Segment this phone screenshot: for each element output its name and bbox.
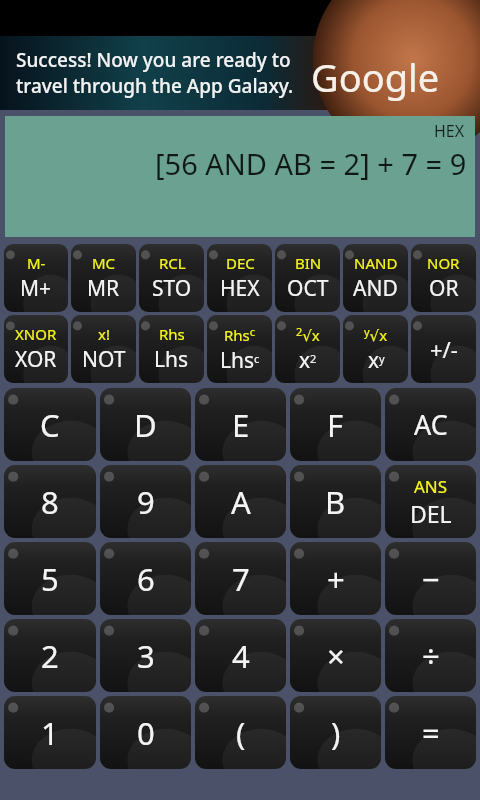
staticText: 7 xyxy=(232,558,250,600)
staticText: RCL xyxy=(159,253,186,273)
button[interactable]: 1 xyxy=(4,696,96,769)
staticText: 6 xyxy=(137,558,155,600)
staticText: Lhsc xyxy=(220,346,260,375)
staticText: [56 AND AB = 2] + 7 = 9 xyxy=(155,144,467,183)
staticText: Success! Now you are ready to xyxy=(16,47,291,73)
button[interactable]: Rhsc xyxy=(207,315,272,383)
button[interactable]: 6 xyxy=(100,542,191,615)
staticText: XNOR xyxy=(15,324,57,344)
staticText: 9 xyxy=(137,481,155,523)
staticText: B xyxy=(325,481,346,523)
staticText: 0 xyxy=(137,712,155,754)
button[interactable]: 3 xyxy=(100,619,191,692)
staticText: A xyxy=(231,481,251,523)
staticText: OCT xyxy=(287,274,329,303)
button[interactable]: 5 xyxy=(4,542,96,615)
button[interactable]: + xyxy=(290,542,381,615)
button[interactable]: DEC xyxy=(207,244,272,312)
staticText: 8 xyxy=(41,481,59,523)
button[interactable]: 2√x xyxy=(275,315,340,383)
button[interactable]: y√x xyxy=(343,315,408,383)
staticText: HEX xyxy=(220,274,260,303)
staticText: 2 xyxy=(41,635,59,677)
staticText: − xyxy=(422,558,440,600)
button[interactable]: x! xyxy=(71,315,136,383)
button[interactable]: F xyxy=(290,388,381,461)
button[interactable]: E xyxy=(195,388,286,461)
button[interactable]: × xyxy=(290,619,381,692)
staticText: 2√x xyxy=(296,324,320,345)
staticText: MR xyxy=(87,274,120,303)
staticText: F xyxy=(327,404,344,446)
button[interactable]: HEX xyxy=(5,116,475,237)
button[interactable]: 0 xyxy=(100,696,191,769)
button[interactable]: − xyxy=(385,542,476,615)
button[interactable]: M- xyxy=(4,244,68,312)
button[interactable]: NAND xyxy=(343,244,408,312)
staticText: OR xyxy=(429,274,459,303)
staticText: NOT xyxy=(82,345,126,374)
button[interactable]: XNOR xyxy=(4,315,68,383)
staticText: ( xyxy=(236,712,246,754)
staticText: STO xyxy=(152,274,192,303)
staticText: M+ xyxy=(20,274,52,303)
staticText: 1 xyxy=(41,712,59,754)
staticText: Rhsc xyxy=(224,324,256,345)
button[interactable]: 8 xyxy=(4,465,96,538)
button[interactable]: 2 xyxy=(4,619,96,692)
staticText: DEC xyxy=(226,253,255,273)
button[interactable]: 9 xyxy=(100,465,191,538)
staticText: MC xyxy=(92,253,116,273)
staticText: × xyxy=(327,635,345,677)
staticText: x! xyxy=(98,324,110,344)
button[interactable]: Advertisement xyxy=(0,36,480,110)
button[interactable]: 4 xyxy=(195,619,286,692)
button[interactable]: Rhs xyxy=(139,315,204,383)
staticText: 11:34 xyxy=(418,4,472,33)
staticText: travel through the App Galaxy. xyxy=(16,73,294,99)
button[interactable]: C xyxy=(4,388,96,461)
button[interactable]: 7 xyxy=(195,542,286,615)
button[interactable]: ÷ xyxy=(385,619,476,692)
button[interactable]: AC xyxy=(385,388,476,461)
button[interactable]: +/- xyxy=(411,315,476,383)
staticText: 3 xyxy=(137,635,155,677)
staticText: +/- xyxy=(430,334,458,364)
button[interactable]: = xyxy=(385,696,476,769)
staticText: 5 xyxy=(41,558,59,600)
staticText: NAND xyxy=(354,253,398,273)
staticText: C xyxy=(40,404,60,446)
button[interactable]: NOR xyxy=(411,244,476,312)
staticText: HEX xyxy=(434,120,465,142)
staticText: Lhs xyxy=(154,345,189,374)
staticText: E xyxy=(232,404,250,446)
button[interactable]: MC xyxy=(71,244,136,312)
staticText: 3G xyxy=(358,11,373,26)
staticText: Google xyxy=(311,51,440,103)
button[interactable]: ) xyxy=(290,696,381,769)
staticText: + xyxy=(327,558,345,600)
staticText: ) xyxy=(331,712,341,754)
button[interactable]: A xyxy=(195,465,286,538)
staticText: XOR xyxy=(15,345,57,374)
staticText: x2 xyxy=(299,346,317,375)
staticText: AC xyxy=(414,406,448,443)
staticText: DEL xyxy=(410,498,452,529)
staticText: xy xyxy=(368,346,385,375)
button[interactable]: D xyxy=(100,388,191,461)
staticText: = xyxy=(422,712,440,754)
button[interactable]: RCL xyxy=(139,244,204,312)
button[interactable]: BIN xyxy=(275,244,340,312)
button[interactable]: ANS xyxy=(385,465,476,538)
staticText: ÷ xyxy=(422,635,440,677)
button[interactable]: ( xyxy=(195,696,286,769)
staticText: ANS xyxy=(414,475,448,498)
staticText: BIN xyxy=(295,253,322,273)
staticText: AND xyxy=(353,274,398,303)
staticText: Rhs xyxy=(159,324,185,344)
staticText: 4 xyxy=(232,635,250,677)
staticText: NOR xyxy=(427,253,460,273)
staticText: D xyxy=(134,404,157,446)
staticText: y√x xyxy=(364,324,388,345)
button[interactable]: B xyxy=(290,465,381,538)
